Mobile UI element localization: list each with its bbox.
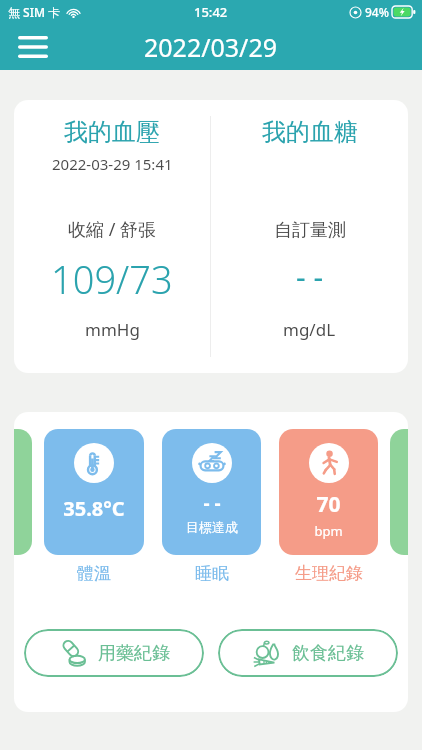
staticText: 109/73 <box>51 253 173 305</box>
button[interactable]: - - <box>162 429 261 584</box>
button[interactable]: 35.8°C <box>44 429 144 584</box>
staticText: 15:42 <box>194 3 228 21</box>
staticText: 我的血壓 <box>64 117 160 147</box>
staticText: 35.8°C <box>63 495 125 522</box>
button[interactable]: 70 <box>279 429 378 584</box>
button[interactable]: 飲食紀錄 <box>218 629 398 677</box>
staticText: 收縮 / 舒張 <box>68 217 157 242</box>
staticText: 目標達成 <box>186 519 238 535</box>
staticText: 2022/03/29 <box>144 30 278 64</box>
staticText: 生理紀錄 <box>295 563 363 584</box>
staticText: - - <box>296 256 324 297</box>
staticText: 2022-03-29 15:41 <box>52 154 173 174</box>
staticText: 我的血糖 <box>262 117 358 147</box>
button[interactable]: 用藥紀錄 <box>24 629 204 677</box>
staticText: 自訂量測 <box>274 219 346 242</box>
staticText: 70 <box>316 490 341 519</box>
staticText: mmHg <box>85 318 140 341</box>
staticText: 體溫 <box>77 563 111 584</box>
staticText: 飲食紀錄 <box>292 642 364 665</box>
button[interactable]: 我的血糖 <box>211 100 408 373</box>
button[interactable]: Previous item <box>14 429 32 555</box>
staticText: 睡眠 <box>195 563 229 584</box>
staticText: 94% <box>365 4 389 20</box>
staticText: 用藥紀錄 <box>98 642 170 665</box>
staticText: bpm <box>314 522 343 540</box>
staticText: 無 SIM 卡 <box>8 4 61 20</box>
button[interactable]: 我的血壓 <box>14 100 210 373</box>
staticText: - - <box>203 490 221 516</box>
button[interactable]: Menu <box>12 26 54 68</box>
staticText: mg/dL <box>283 318 336 341</box>
button[interactable]: Next item <box>390 429 408 555</box>
